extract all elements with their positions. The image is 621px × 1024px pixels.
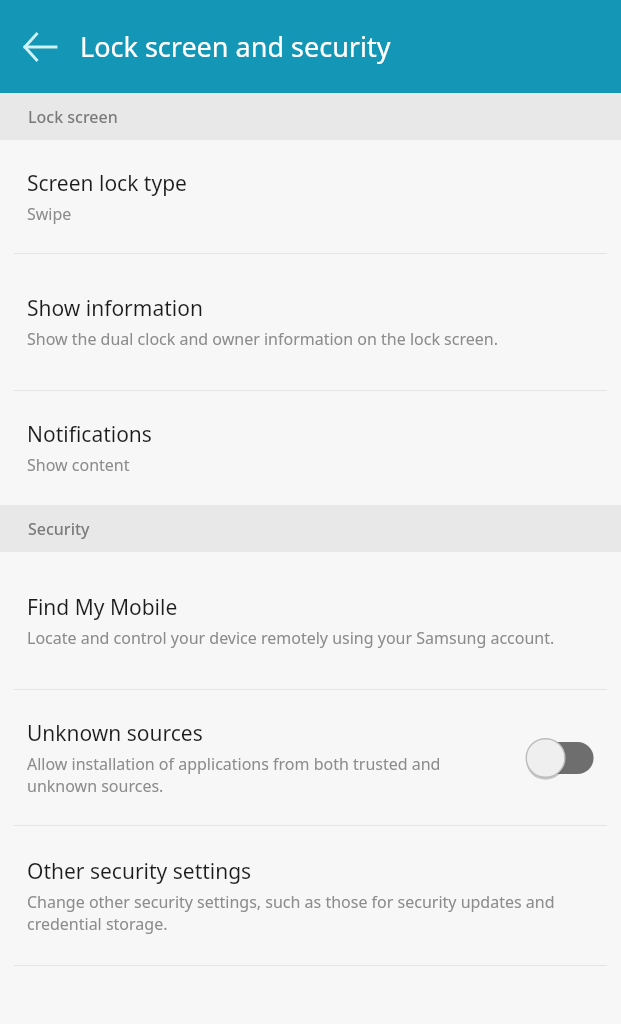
staticText: Screen lock type bbox=[27, 169, 187, 198]
staticText: Swipe bbox=[27, 203, 72, 225]
button[interactable]: Find My Mobile bbox=[0, 552, 621, 689]
button[interactable]: Show information bbox=[0, 254, 621, 390]
staticText: Notifications bbox=[27, 420, 152, 449]
button[interactable]: Other security settings bbox=[0, 826, 621, 965]
button[interactable]: Screen lock type bbox=[0, 140, 621, 253]
staticText: Other security settings bbox=[27, 857, 252, 886]
staticText: Unknown sources bbox=[27, 719, 203, 748]
button[interactable]: Notifications bbox=[0, 391, 621, 505]
staticText: Show the dual clock and owner informatio… bbox=[27, 328, 498, 350]
button[interactable]: Unknown sources toggle bbox=[523, 737, 595, 779]
staticText: Allow installation of applications from … bbox=[27, 753, 511, 797]
staticText: Locate and control your device remotely … bbox=[27, 627, 555, 649]
button[interactable]: Back bbox=[12, 19, 68, 75]
staticText: Show information bbox=[27, 294, 203, 323]
button[interactable]: Unknown sources bbox=[0, 690, 621, 825]
staticText: Security bbox=[28, 518, 90, 540]
staticText: Lock screen bbox=[28, 106, 118, 128]
staticText: Find My Mobile bbox=[27, 593, 178, 622]
staticText: Change other security settings, such as … bbox=[27, 891, 591, 935]
staticText: Lock screen and security bbox=[80, 28, 391, 65]
staticText: Show content bbox=[27, 454, 130, 476]
